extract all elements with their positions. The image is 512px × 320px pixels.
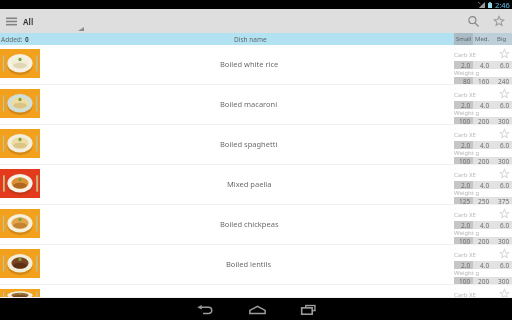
button[interactable]: Favorite xyxy=(499,88,509,98)
button[interactable]: Boiled spaghetti xyxy=(0,125,512,165)
staticText: 300 xyxy=(498,157,510,165)
button[interactable]: All xyxy=(6,9,34,33)
button[interactable]: Favorite xyxy=(499,48,509,58)
button[interactable]: Search xyxy=(461,9,485,33)
button[interactable]: Favorite xyxy=(499,248,509,258)
staticText: 2.0 xyxy=(461,101,471,109)
staticText: Carb XE xyxy=(454,131,476,139)
staticText: Weight g xyxy=(454,109,480,117)
staticText: 375 xyxy=(498,197,510,205)
staticText: Big xyxy=(497,35,507,43)
button[interactable]: Boiled white rice xyxy=(0,45,512,85)
staticText: Boiled lentils xyxy=(226,259,272,269)
staticText: 4.0 xyxy=(480,261,490,269)
staticText: 6.0 xyxy=(500,101,510,109)
staticText: 250 xyxy=(478,197,490,205)
button[interactable]: Back xyxy=(190,299,220,320)
staticText: Small xyxy=(456,35,472,43)
staticText: 200 xyxy=(478,117,490,125)
staticText: Weight g xyxy=(454,149,480,157)
staticText: 160 xyxy=(478,77,490,85)
staticText: Mixed paella xyxy=(227,179,272,189)
staticText: 4.0 xyxy=(480,101,490,109)
staticText: Carb XE xyxy=(454,211,476,219)
staticText: Boiled white rice xyxy=(220,59,279,69)
staticText: 100 xyxy=(459,237,471,245)
button[interactable]: Mixed paella xyxy=(0,165,512,205)
staticText: 6.0 xyxy=(500,261,510,269)
staticText: Boiled macaroni xyxy=(220,99,278,109)
staticText: 80 xyxy=(463,77,471,85)
staticText: Added: xyxy=(1,35,25,44)
staticText: 100 xyxy=(459,117,471,125)
staticText: 6.0 xyxy=(500,61,510,69)
staticText: 6.0 xyxy=(500,141,510,149)
staticText: Weight g xyxy=(454,269,480,277)
staticText: 200 xyxy=(478,157,490,165)
button[interactable]: Boiled lentils xyxy=(0,245,512,285)
staticText: 2.0 xyxy=(461,181,471,189)
button[interactable]: Favorite xyxy=(499,168,509,178)
staticText: 2.0 xyxy=(461,61,471,69)
staticText: 2.0 xyxy=(461,221,471,229)
staticText: 2:46 xyxy=(495,0,510,9)
button[interactable]: Boiled chickpeas xyxy=(0,205,512,245)
button[interactable]: Favorite xyxy=(499,128,509,138)
staticText: Carb XE xyxy=(454,251,476,259)
staticText: 4.0 xyxy=(480,141,490,149)
staticText: 4.0 xyxy=(480,181,490,189)
staticText: 4.0 xyxy=(480,221,490,229)
staticText: 300 xyxy=(498,117,510,125)
button[interactable]: Boiled macaroni xyxy=(0,85,512,125)
staticText: 200 xyxy=(478,237,490,245)
staticText: Weight g xyxy=(454,189,480,197)
staticText: Carb XE xyxy=(454,91,476,99)
button[interactable]: Favorite xyxy=(499,288,509,298)
staticText: Carb XE xyxy=(454,171,476,179)
staticText: 100 xyxy=(459,277,471,285)
staticText: Boiled buckwheat xyxy=(218,299,281,309)
staticText: Boiled chickpeas xyxy=(220,219,279,229)
staticText: Med. xyxy=(475,35,490,43)
button[interactable]: Favorite xyxy=(499,208,509,218)
staticText: Carb XE xyxy=(454,51,476,59)
staticText: 4.0 xyxy=(480,61,490,69)
staticText: All xyxy=(23,16,34,27)
staticText: 300 xyxy=(498,237,510,245)
staticText: Boiled spaghetti xyxy=(220,139,278,149)
staticText: Carb XE xyxy=(454,291,476,299)
staticText: Weight g xyxy=(454,69,480,77)
button[interactable]: Favorites xyxy=(487,9,511,33)
staticText: 6.0 xyxy=(500,221,510,229)
staticText: 240 xyxy=(498,77,510,85)
staticText: 100 xyxy=(459,157,471,165)
button[interactable]: Recents xyxy=(294,299,324,320)
staticText: Dish name xyxy=(234,35,267,44)
staticText: 6.0 xyxy=(500,181,510,189)
button[interactable]: Boiled buckwheat xyxy=(0,285,512,298)
staticText: Weight g xyxy=(454,229,480,237)
staticText: 125 xyxy=(459,197,471,205)
button[interactable]: Home xyxy=(242,299,272,320)
staticText: 2.0 xyxy=(461,141,471,149)
staticText: 300 xyxy=(498,277,510,285)
staticText: 0 xyxy=(25,35,29,44)
staticText: 2.0 xyxy=(461,261,471,269)
staticText: 200 xyxy=(478,277,490,285)
